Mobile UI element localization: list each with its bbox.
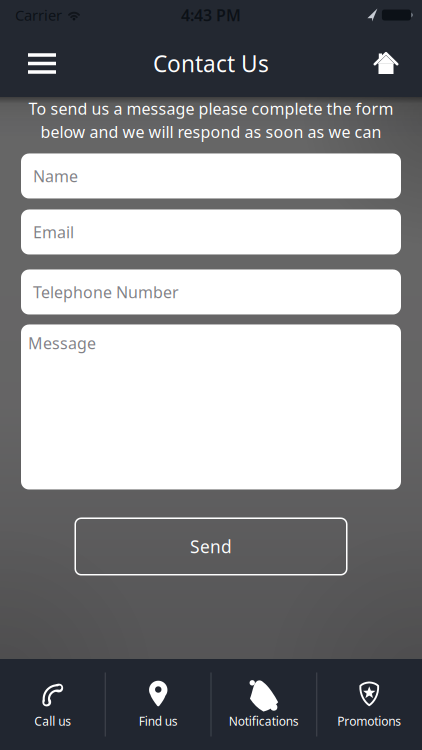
staticText: Contact Us (153, 48, 269, 78)
staticText: 4:43 PM (181, 4, 241, 26)
staticText: To send us a message please complete the… (28, 98, 393, 119)
staticText: Call us (34, 713, 71, 729)
staticText: Telephone Number (33, 281, 179, 303)
staticText: Send (190, 535, 232, 558)
button[interactable]: Name (21, 153, 401, 198)
button[interactable]: Home (358, 38, 414, 88)
button[interactable]: Notifications (211, 659, 316, 750)
button[interactable]: Menu (14, 38, 70, 88)
button[interactable]: Promotions (316, 659, 422, 750)
staticText: Notifications (229, 713, 299, 729)
button[interactable]: Send (74, 517, 347, 575)
staticText: below and we will respond as soon as we … (40, 121, 381, 142)
staticText: Find us (139, 713, 178, 729)
button[interactable]: Find us (105, 659, 211, 750)
staticText: Name (33, 165, 78, 187)
button[interactable]: Email (21, 209, 401, 254)
staticText: Promotions (337, 713, 401, 729)
staticText: Carrier (15, 5, 62, 25)
button[interactable]: Telephone Number (21, 269, 401, 314)
button[interactable]: Message (21, 324, 401, 489)
staticText: Message (28, 332, 96, 354)
button[interactable]: Call us (0, 659, 105, 750)
staticText: Email (33, 221, 74, 243)
